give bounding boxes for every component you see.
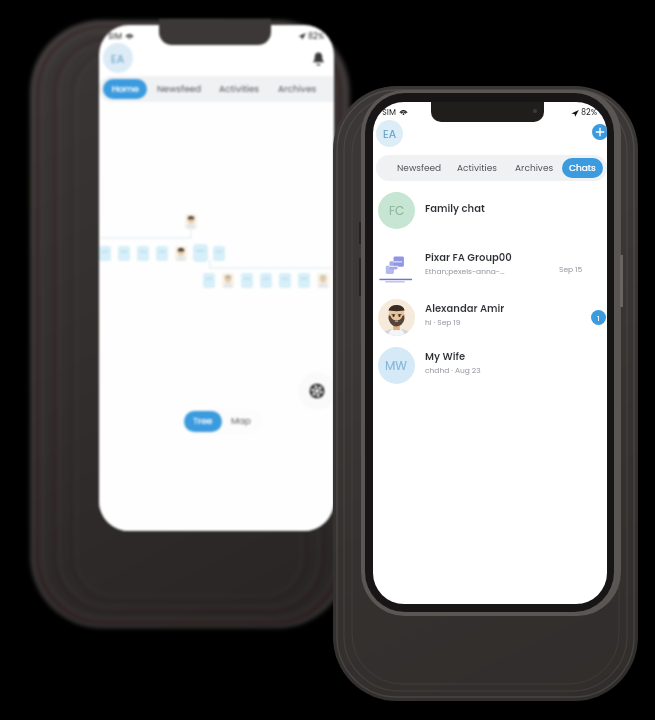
button[interactable]: FC xyxy=(373,187,607,235)
button[interactable]: Newsfeed xyxy=(157,76,202,102)
button[interactable]: Tree xyxy=(184,411,222,432)
button[interactable] xyxy=(137,246,149,261)
staticText: 82% xyxy=(308,31,325,42)
button[interactable]: Home xyxy=(103,79,147,99)
staticText: EA xyxy=(383,126,397,141)
button[interactable]: New chat xyxy=(592,124,607,140)
button[interactable] xyxy=(260,273,272,288)
staticText: MW xyxy=(385,357,408,374)
button[interactable]: Notifications xyxy=(308,48,328,68)
button[interactable] xyxy=(203,273,215,288)
button[interactable]: MW xyxy=(373,342,607,390)
staticText: Map xyxy=(231,415,251,428)
button[interactable] xyxy=(99,246,111,261)
button[interactable]: Newsfeed xyxy=(395,155,443,181)
staticText: Activities xyxy=(219,83,260,96)
button[interactable]: Settings xyxy=(298,372,334,410)
button[interactable]: Archives xyxy=(513,155,555,181)
staticText: SIM xyxy=(108,31,122,42)
button[interactable] xyxy=(175,246,187,261)
button[interactable]: Alexandar Amir xyxy=(373,294,607,342)
staticText: FC xyxy=(389,202,405,219)
button[interactable]: Chats xyxy=(562,158,603,178)
button[interactable] xyxy=(222,273,234,288)
staticText: 1 xyxy=(597,313,600,323)
staticText: Activities xyxy=(457,162,498,175)
button[interactable] xyxy=(279,273,291,288)
staticText: My Wife xyxy=(425,349,466,363)
button[interactable] xyxy=(193,244,208,262)
button[interactable]: Activities xyxy=(219,76,260,102)
button[interactable] xyxy=(118,246,130,261)
button[interactable] xyxy=(213,246,225,261)
staticText: Chats xyxy=(569,162,596,175)
staticText: hi · Sep 19 xyxy=(425,317,461,327)
staticText: chdhd · Aug 23 xyxy=(425,365,481,375)
button[interactable]: EA xyxy=(376,120,403,147)
button[interactable]: Pixar FA Group00 xyxy=(373,243,607,291)
staticText: Tree xyxy=(193,415,213,428)
button[interactable]: Archives xyxy=(277,76,317,102)
button[interactable] xyxy=(298,273,310,288)
staticText: Alexandar Amir xyxy=(425,301,505,315)
button[interactable] xyxy=(156,246,168,261)
staticText: Family chat xyxy=(425,201,485,215)
staticText: Home xyxy=(112,83,139,96)
button[interactable]: Map xyxy=(222,411,260,432)
staticText: EA xyxy=(111,51,125,66)
button[interactable] xyxy=(317,273,329,288)
button[interactable] xyxy=(241,273,253,288)
staticText: Sep 15 xyxy=(559,264,583,274)
staticText: Pixar FA Group00 xyxy=(425,250,512,264)
staticText: 82% xyxy=(581,107,598,118)
button[interactable]: Activities xyxy=(456,155,499,181)
staticText: Ethan;pexels-anna-... xyxy=(425,266,505,276)
button[interactable] xyxy=(185,214,197,229)
button[interactable]: EA xyxy=(103,43,133,73)
staticText: SIM xyxy=(382,107,396,118)
staticText: Newsfeed xyxy=(157,83,202,96)
staticText: Archives xyxy=(515,162,554,175)
staticText: Archives xyxy=(278,83,317,96)
staticText: Newsfeed xyxy=(397,162,442,175)
